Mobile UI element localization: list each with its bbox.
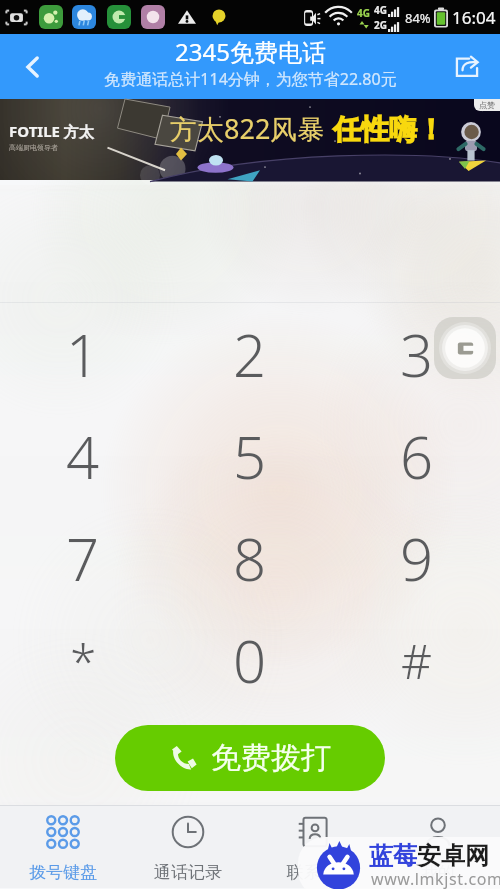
staticText: 通话记录 (154, 862, 222, 883)
staticText: 2G (374, 18, 387, 32)
button[interactable]: 1 (0, 303, 166, 405)
button[interactable]: 0 (166, 609, 333, 711)
staticText: 我的 (421, 862, 455, 883)
button[interactable]: 免费拨打 (115, 725, 385, 791)
button[interactable]: # (333, 609, 500, 711)
staticText: 方太822风暴 (170, 110, 325, 147)
button[interactable]: 9 (333, 507, 500, 609)
staticText: 安卓网 (417, 841, 489, 871)
staticText: 8 (233, 519, 267, 598)
button[interactable]: 2 (166, 303, 333, 405)
staticText: 5 (233, 417, 267, 496)
staticText: 9 (400, 519, 434, 598)
staticText: 任性嗨！ (333, 112, 445, 147)
staticText: 拨号键盘 (29, 862, 97, 883)
staticText: 6 (400, 417, 434, 496)
staticText: FOTILE 方太 (9, 121, 94, 141)
staticText: 免费通话总计114分钟，为您节省22.80元 (104, 68, 397, 90)
button[interactable]: Back (0, 34, 66, 99)
staticText: 0 (233, 621, 267, 700)
staticText: 16:04 (452, 6, 496, 29)
staticText: 高端厨电领导者 (9, 143, 58, 152)
staticText: 1 (66, 315, 100, 394)
staticText: 3 (400, 315, 434, 394)
staticText: 4G (357, 6, 370, 20)
button[interactable]: Floating assistant (434, 317, 496, 379)
button[interactable]: 拨号键盘 (0, 808, 125, 889)
staticText: 4G (374, 3, 387, 17)
staticText: # (401, 628, 433, 693)
button[interactable]: 7 (0, 507, 166, 609)
button[interactable]: 3 (333, 303, 500, 405)
staticText: 84% (405, 9, 431, 27)
button[interactable]: FOTILE 方太 (0, 99, 500, 180)
button[interactable]: 我的 (375, 808, 500, 889)
staticText: www.lmkjst.com (371, 868, 500, 889)
staticText: 7 (66, 519, 100, 598)
staticText: 联系人 (287, 862, 338, 883)
staticText: 点赞 (479, 100, 495, 110)
staticText: 2 (233, 315, 267, 394)
button[interactable]: Share (434, 34, 500, 99)
staticText: 4 (66, 417, 100, 496)
staticText: * (70, 628, 97, 693)
button[interactable]: 6 (333, 405, 500, 507)
button[interactable]: 联系人 (250, 808, 375, 889)
button[interactable]: * (0, 609, 166, 711)
staticText: 2345免费电话 (175, 35, 326, 68)
button[interactable]: 4 (0, 405, 166, 507)
button[interactable]: 通话记录 (125, 808, 250, 889)
button[interactable]: 8 (166, 507, 333, 609)
staticText: 免费拨打 (211, 739, 331, 777)
staticText: 蓝莓 (369, 841, 417, 871)
button[interactable]: 5 (166, 405, 333, 507)
